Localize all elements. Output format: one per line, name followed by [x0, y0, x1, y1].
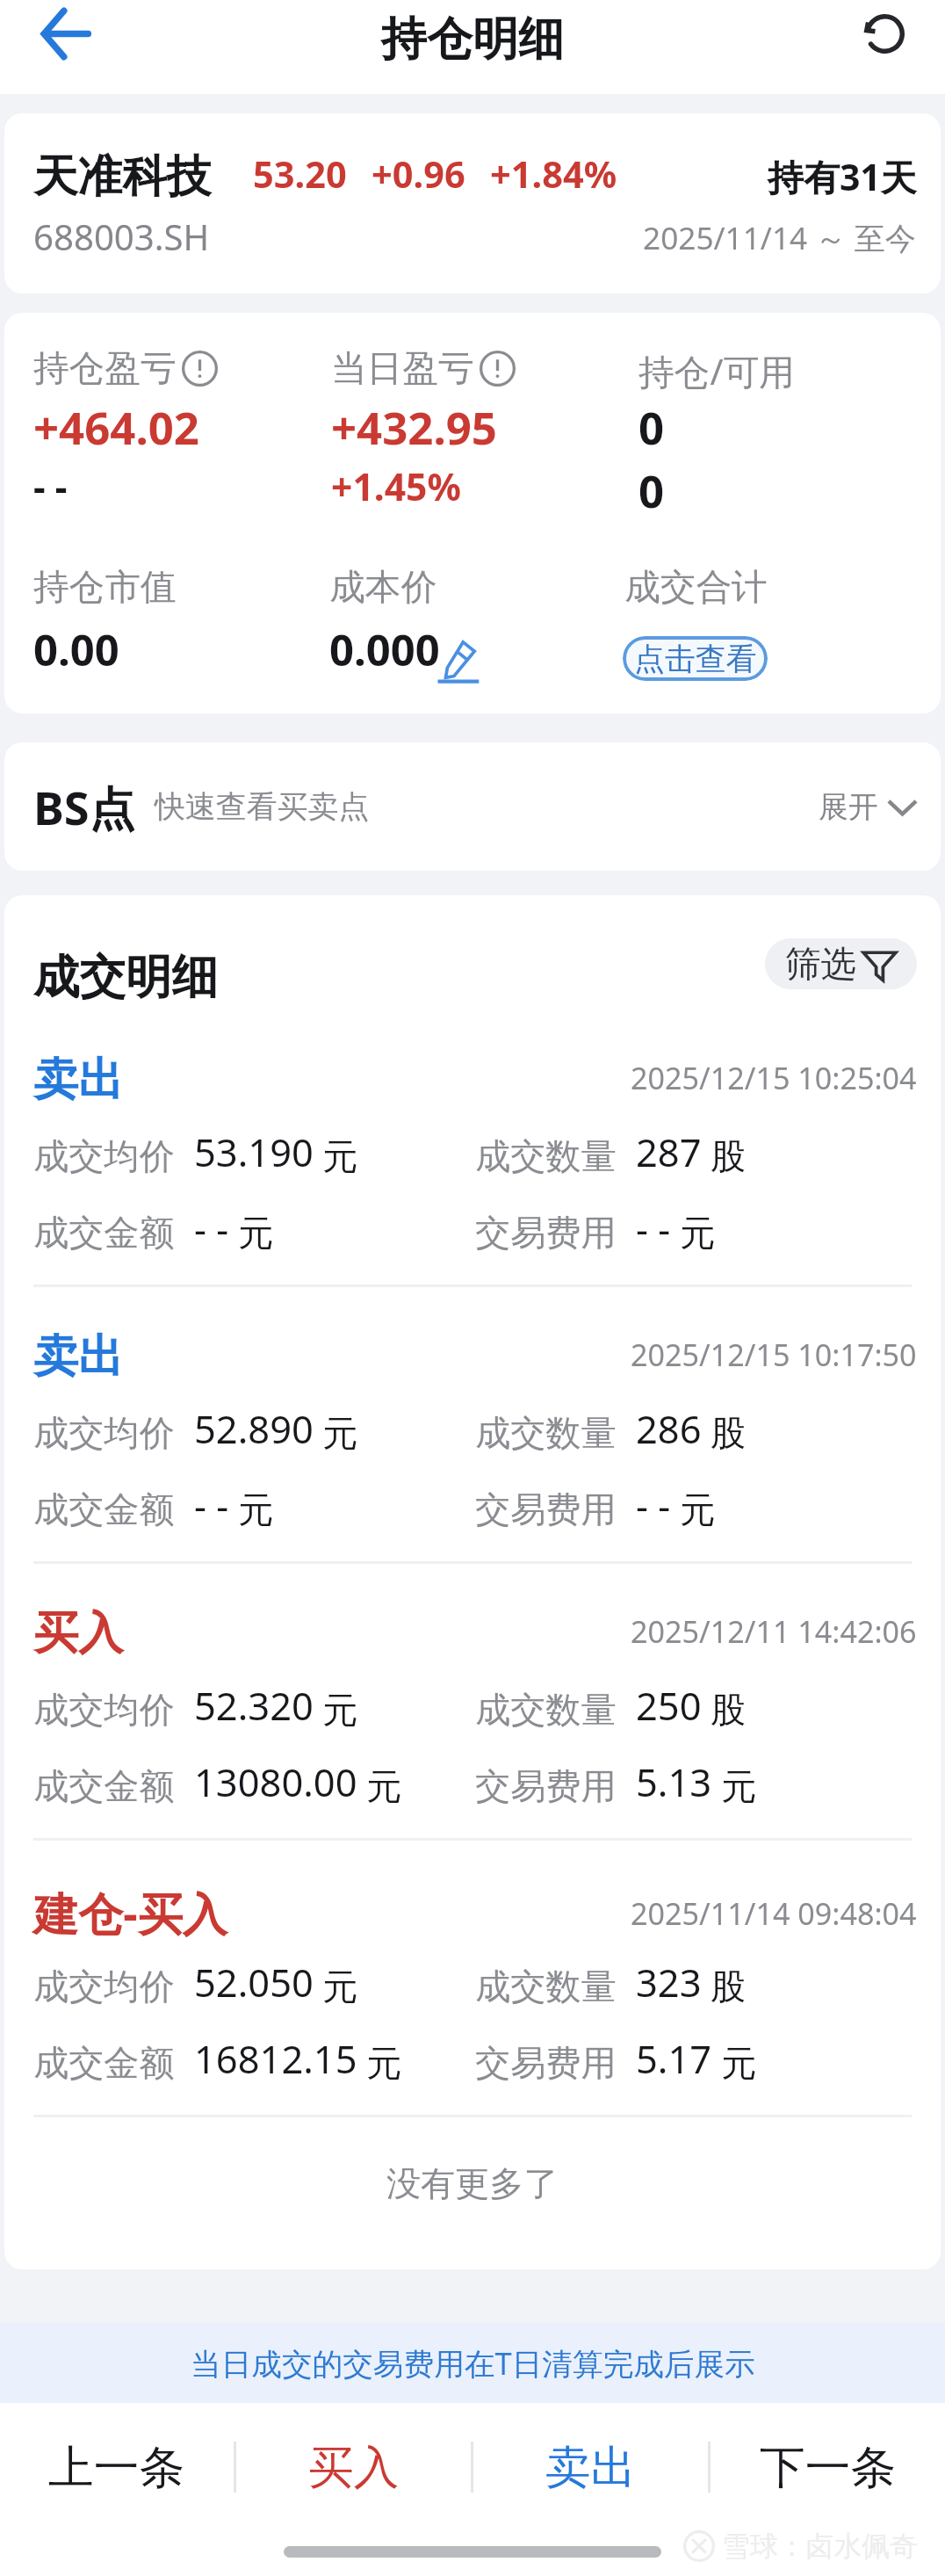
staticText: 元: [322, 1134, 358, 1179]
staticText: 0.000: [329, 620, 440, 679]
button[interactable]: Back: [25, 0, 107, 75]
staticText: 元: [322, 1411, 358, 1456]
staticText: - -: [636, 1480, 671, 1531]
staticText: 成交均价: [33, 1134, 175, 1179]
staticText: 成交数量: [475, 1965, 617, 2009]
staticText: 下一条: [760, 2439, 897, 2496]
staticText: 成交均价: [33, 1688, 175, 1733]
staticText: 16812.15: [194, 2033, 357, 2085]
staticText: 5.17: [636, 2033, 712, 2085]
button[interactable]: Refresh: [843, 0, 926, 75]
button[interactable]: 点击查看: [623, 636, 768, 681]
staticText: 成交数量: [475, 1134, 617, 1179]
button[interactable]: 下一条: [711, 2403, 945, 2531]
button[interactable]: 筛选: [765, 938, 917, 989]
staticText: 成交明细: [33, 948, 219, 1006]
staticText: 323: [636, 1957, 702, 2008]
staticText: +432.95: [331, 397, 497, 458]
staticText: 2025/11/14 ～ 至今: [643, 216, 917, 258]
staticText: 股: [711, 1411, 747, 1456]
staticText: 展开: [819, 788, 878, 826]
staticText: 287: [636, 1126, 702, 1178]
staticText: +0.96: [372, 149, 465, 199]
staticText: 元: [238, 1487, 274, 1532]
staticText: 0: [638, 397, 665, 458]
staticText: 交易费用: [475, 2041, 617, 2086]
staticText: 持有31天: [768, 152, 917, 201]
staticText: 元: [322, 1688, 358, 1733]
staticText: 建仓-买入: [33, 1882, 227, 1943]
staticText: 13080.00: [194, 1756, 357, 1808]
staticText: 股: [711, 1965, 747, 2009]
staticText: 交易费用: [475, 1764, 617, 1809]
staticText: +464.02: [33, 397, 199, 458]
staticText: 53.20: [253, 149, 347, 199]
staticText: - -: [33, 460, 68, 511]
staticText: 持仓明细: [381, 11, 564, 68]
staticText: BS点: [33, 776, 135, 838]
staticText: 52.890: [194, 1403, 314, 1455]
staticText: 雪球：卤水佩奇: [722, 2529, 919, 2564]
staticText: 点击查看: [634, 640, 757, 678]
staticText: 交易费用: [475, 1211, 617, 1255]
staticText: 交易费用: [475, 1487, 617, 1532]
button[interactable]: 上一条: [0, 2403, 234, 2531]
staticText: - -: [636, 1203, 671, 1255]
staticText: 当日盈亏: [331, 346, 474, 391]
staticText: 卖出: [33, 1328, 124, 1385]
staticText: 当日成交的交易费用在T日清算完成后展示: [191, 2342, 755, 2384]
staticText: 成交均价: [33, 1411, 175, 1456]
staticText: 286: [636, 1403, 702, 1455]
staticText: 成交金额: [33, 1764, 175, 1809]
staticText: 0.00: [33, 620, 119, 679]
staticText: +1.84%: [490, 149, 617, 199]
button[interactable]: 卖出: [473, 2403, 708, 2531]
staticText: - -: [194, 1480, 229, 1531]
staticText: 688003.SH: [33, 213, 210, 261]
staticText: 卖出: [545, 2439, 637, 2496]
staticText: 2025/11/14 09:48:04: [631, 1893, 917, 1934]
staticText: 元: [721, 1764, 757, 1809]
staticText: 持仓盈亏: [33, 346, 177, 391]
staticText: 52.050: [194, 1957, 314, 2008]
button[interactable]: 买入: [236, 2403, 471, 2531]
staticText: 52.320: [194, 1680, 314, 1732]
staticText: 上一条: [48, 2439, 185, 2496]
button[interactable]: Edit cost price: [444, 641, 475, 679]
staticText: +1.45%: [331, 460, 461, 511]
staticText: 买入: [308, 2439, 400, 2496]
staticText: 0: [638, 460, 665, 521]
staticText: 成交数量: [475, 1411, 617, 1456]
staticText: 元: [680, 1487, 716, 1532]
staticText: 元: [366, 1764, 402, 1809]
staticText: 快速查看买卖点: [155, 787, 370, 826]
staticText: 持仓市值: [33, 565, 177, 610]
staticText: 股: [711, 1688, 747, 1733]
staticText: 2025/12/15 10:25:04: [631, 1058, 917, 1098]
staticText: 2025/12/15 10:17:50: [631, 1335, 917, 1375]
staticText: 53.190: [194, 1126, 314, 1178]
staticText: 2025/12/11 14:42:06: [631, 1611, 917, 1652]
staticText: 成交金额: [33, 2041, 175, 2086]
staticText: 元: [322, 1965, 358, 2009]
staticText: 买入: [33, 1605, 124, 1661]
staticText: 元: [721, 2041, 757, 2086]
button[interactable]: BS点: [4, 742, 941, 871]
staticText: 元: [680, 1211, 716, 1255]
staticText: 没有更多了: [386, 2162, 559, 2205]
staticText: 成交合计: [624, 565, 768, 610]
staticText: 成交金额: [33, 1211, 175, 1255]
staticText: 天准科技: [33, 148, 212, 205]
staticText: 250: [636, 1680, 702, 1732]
staticText: 持仓/可用: [638, 346, 795, 395]
staticText: 元: [238, 1211, 274, 1255]
staticText: 筛选: [785, 942, 856, 987]
staticText: 成交均价: [33, 1965, 175, 2009]
staticText: 股: [711, 1134, 747, 1179]
staticText: 成交数量: [475, 1688, 617, 1733]
staticText: 卖出: [33, 1052, 124, 1108]
staticText: 成本价: [329, 565, 437, 610]
staticText: 元: [366, 2041, 402, 2086]
staticText: 5.13: [636, 1756, 712, 1808]
staticText: - -: [194, 1203, 229, 1255]
